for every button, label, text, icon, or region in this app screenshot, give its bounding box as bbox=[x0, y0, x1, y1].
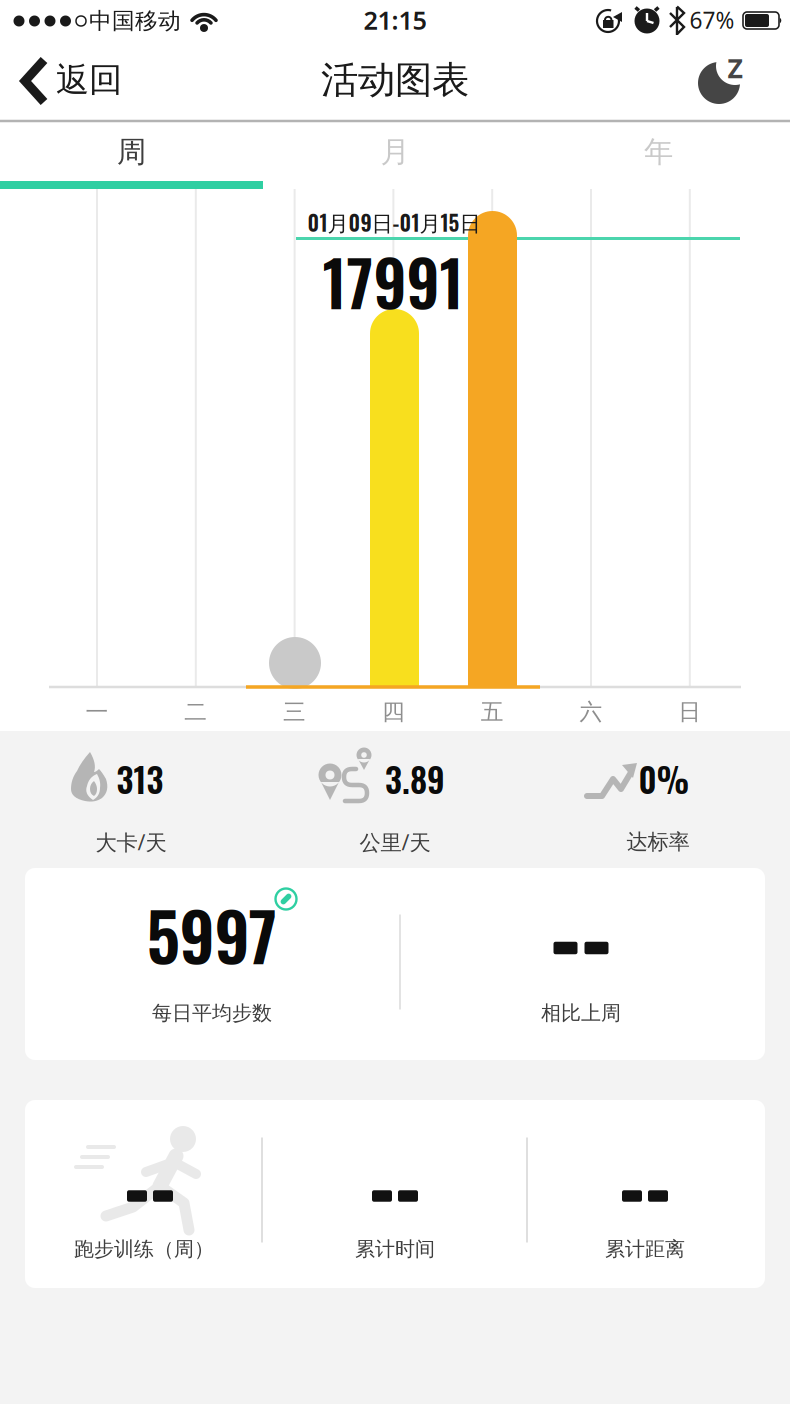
button[interactable]: 年 bbox=[526, 123, 790, 181]
staticText: 中国移动 bbox=[89, 7, 181, 35]
staticText: 日 bbox=[678, 698, 701, 726]
staticText: 月 bbox=[380, 134, 409, 170]
staticText: 01月09日-01月15日 bbox=[307, 206, 480, 238]
staticText: 21:15 bbox=[363, 3, 426, 37]
staticText: 相比上周 bbox=[541, 1001, 621, 1025]
staticText: 67% bbox=[689, 5, 734, 35]
staticText: 六 bbox=[579, 698, 602, 726]
staticText: 每日平均步数 bbox=[152, 1001, 272, 1025]
staticText: 达标率 bbox=[626, 829, 689, 855]
staticText: 大卡/天 bbox=[95, 828, 166, 856]
staticText: 三 bbox=[283, 698, 306, 726]
button[interactable]: 周 bbox=[0, 123, 263, 181]
staticText: 5997 bbox=[146, 885, 277, 983]
staticText: 活动图表 bbox=[321, 57, 469, 103]
staticText: 3.89 bbox=[385, 754, 445, 804]
button[interactable]: 月 bbox=[263, 123, 526, 181]
staticText: 0% bbox=[638, 754, 689, 804]
staticText: 公里/天 bbox=[359, 828, 430, 856]
staticText: 二 bbox=[184, 698, 207, 726]
staticText: 年 bbox=[644, 134, 673, 170]
staticText: 累计距离 bbox=[605, 1237, 685, 1261]
staticText: 周 bbox=[117, 134, 146, 170]
staticText: 累计时间 bbox=[355, 1237, 435, 1261]
staticText: 五 bbox=[481, 698, 504, 726]
button[interactable]: Edit goal bbox=[271, 884, 301, 914]
staticText: 跑步训练（周） bbox=[74, 1237, 214, 1261]
staticText: 17991 bbox=[322, 235, 463, 327]
staticText: 一 bbox=[85, 698, 108, 726]
button[interactable]: 返回 bbox=[15, 41, 165, 121]
button[interactable]: Sleep mode bbox=[694, 49, 750, 105]
staticText: Z bbox=[727, 50, 742, 86]
staticText: 313 bbox=[116, 754, 163, 804]
staticText: 返回 bbox=[56, 59, 122, 100]
staticText: 四 bbox=[382, 698, 405, 726]
